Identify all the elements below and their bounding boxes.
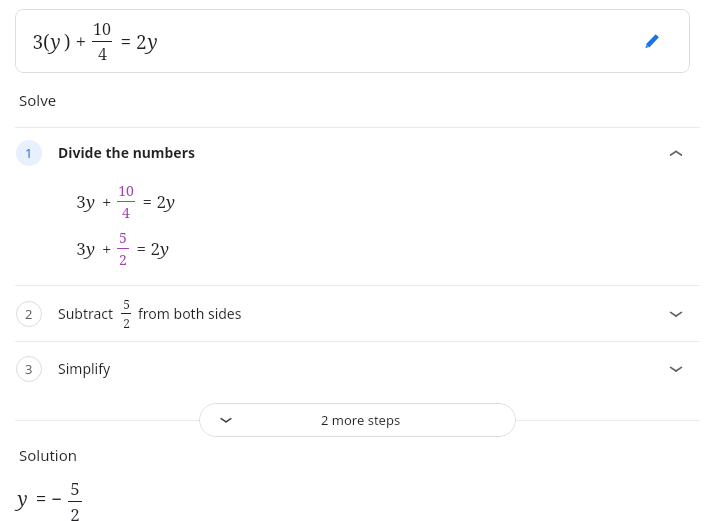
staticText: y — [86, 237, 95, 260]
staticText: Divide the numbers — [58, 143, 195, 162]
staticText: = − — [28, 486, 65, 512]
staticText: 10 — [93, 18, 111, 40]
staticText: Solution — [19, 445, 78, 465]
button[interactable]: 3( — [15, 9, 690, 73]
staticText: 3 — [76, 237, 86, 260]
staticText: 4 — [98, 43, 107, 65]
staticText: 5 — [119, 228, 127, 247]
staticText: 2 — [25, 305, 33, 323]
staticText: y — [160, 237, 169, 260]
staticText: 3( — [32, 29, 50, 55]
staticText: 10 — [118, 181, 134, 200]
staticText: 1 — [25, 144, 33, 162]
staticText: Subtract — [58, 304, 114, 323]
staticText: 2 — [119, 250, 127, 269]
staticText: 2 more steps — [321, 411, 401, 429]
staticText: 5 — [123, 296, 130, 312]
button[interactable]: 1 — [0, 128, 710, 177]
staticText: y — [147, 29, 158, 55]
staticText: y — [50, 29, 61, 55]
staticText: y — [17, 486, 28, 512]
staticText: Solve — [19, 90, 57, 110]
staticText: 2 — [123, 315, 130, 331]
button[interactable]: 2 more steps — [199, 403, 516, 437]
staticText: 3 — [76, 190, 86, 213]
staticText: y — [166, 190, 175, 213]
staticText: 5 — [70, 477, 80, 500]
staticText: = 2 — [138, 190, 166, 213]
staticText: + — [95, 190, 114, 213]
staticText: ) + — [61, 29, 89, 55]
staticText: 4 — [122, 203, 130, 222]
staticText: + — [95, 237, 114, 260]
staticText: = 2 — [115, 29, 147, 55]
button[interactable]: 3 — [0, 342, 710, 395]
staticText: from both sides — [138, 304, 242, 323]
staticText: Simplify — [58, 359, 111, 378]
staticText: = 2 — [132, 237, 160, 260]
staticText: y — [86, 190, 95, 213]
staticText: 2 — [70, 503, 80, 521]
button[interactable]: Edit equation — [635, 24, 669, 58]
button[interactable]: 2 — [0, 286, 710, 341]
staticText: 3 — [25, 360, 33, 378]
